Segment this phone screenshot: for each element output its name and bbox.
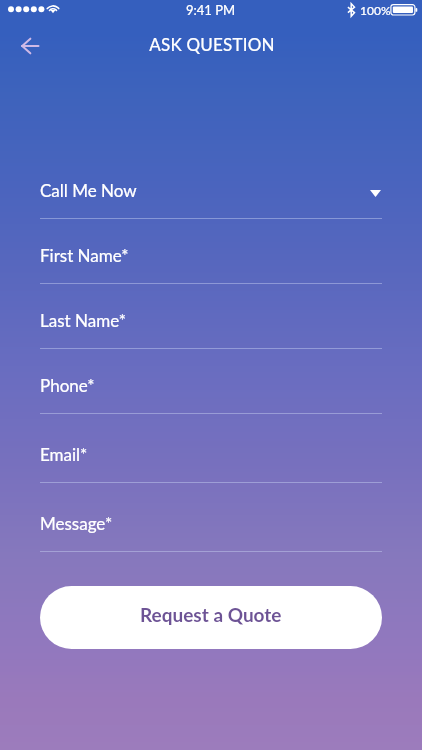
staticText: First Name* xyxy=(40,245,129,265)
button[interactable]: Email* xyxy=(40,436,382,483)
staticText: Request a Quote xyxy=(140,603,282,626)
button[interactable]: Back xyxy=(8,25,52,67)
staticText: 100% xyxy=(360,3,391,17)
staticText: Phone* xyxy=(40,375,95,395)
staticText: 9:41 PM xyxy=(186,2,236,18)
button[interactable]: Call Me Now xyxy=(40,172,382,219)
staticText: Last Name* xyxy=(40,310,126,330)
staticText: Call Me Now xyxy=(40,180,137,200)
button[interactable]: Message* xyxy=(40,505,382,552)
button[interactable]: Phone* xyxy=(40,367,382,414)
staticText: Email* xyxy=(40,444,88,464)
staticText: ASK QUESTION xyxy=(149,34,275,54)
button[interactable]: Request a Quote xyxy=(40,586,382,649)
staticText: Message* xyxy=(40,513,113,533)
button[interactable]: First Name* xyxy=(40,237,382,284)
button[interactable]: Last Name* xyxy=(40,302,382,349)
